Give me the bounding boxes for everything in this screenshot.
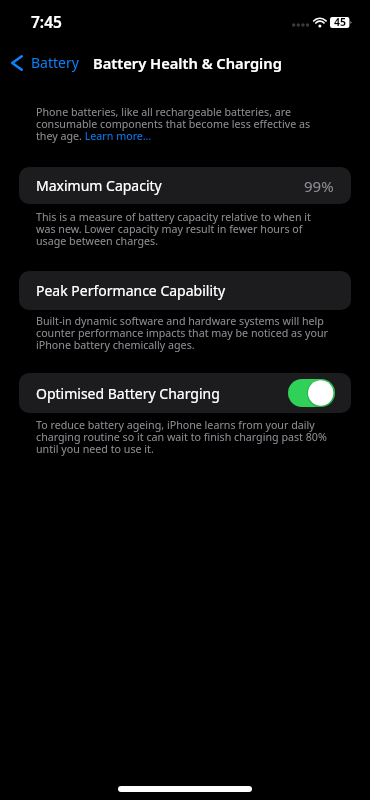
staticText: 45	[334, 15, 347, 29]
staticText: 7:45	[31, 11, 62, 32]
staticText: 99%	[304, 176, 334, 196]
staticText: Maximum Capacity	[36, 176, 162, 195]
staticText: Peak Performance Capability	[36, 281, 226, 300]
staticText: Battery Health & Charging	[93, 53, 282, 73]
staticText: Battery	[31, 53, 79, 72]
staticText: To reduce battery ageing, iPhone learns …	[36, 418, 331, 456]
staticText: Phone batteries, like all rechargeable b…	[36, 105, 331, 143]
button[interactable]: Maximum Capacity	[19, 167, 351, 204]
staticText: This is a measure of battery capacity re…	[36, 210, 331, 248]
button[interactable]: Peak Performance Capability	[19, 271, 351, 310]
button[interactable]: Optimised Battery Charging	[19, 373, 351, 413]
button[interactable]: Back to Battery	[0, 48, 85, 77]
staticText: Built-in dynamic software and hardware s…	[36, 314, 331, 352]
staticText: Optimised Battery Charging	[36, 384, 220, 403]
button[interactable]: Optimised Battery Charging toggle	[288, 379, 335, 407]
